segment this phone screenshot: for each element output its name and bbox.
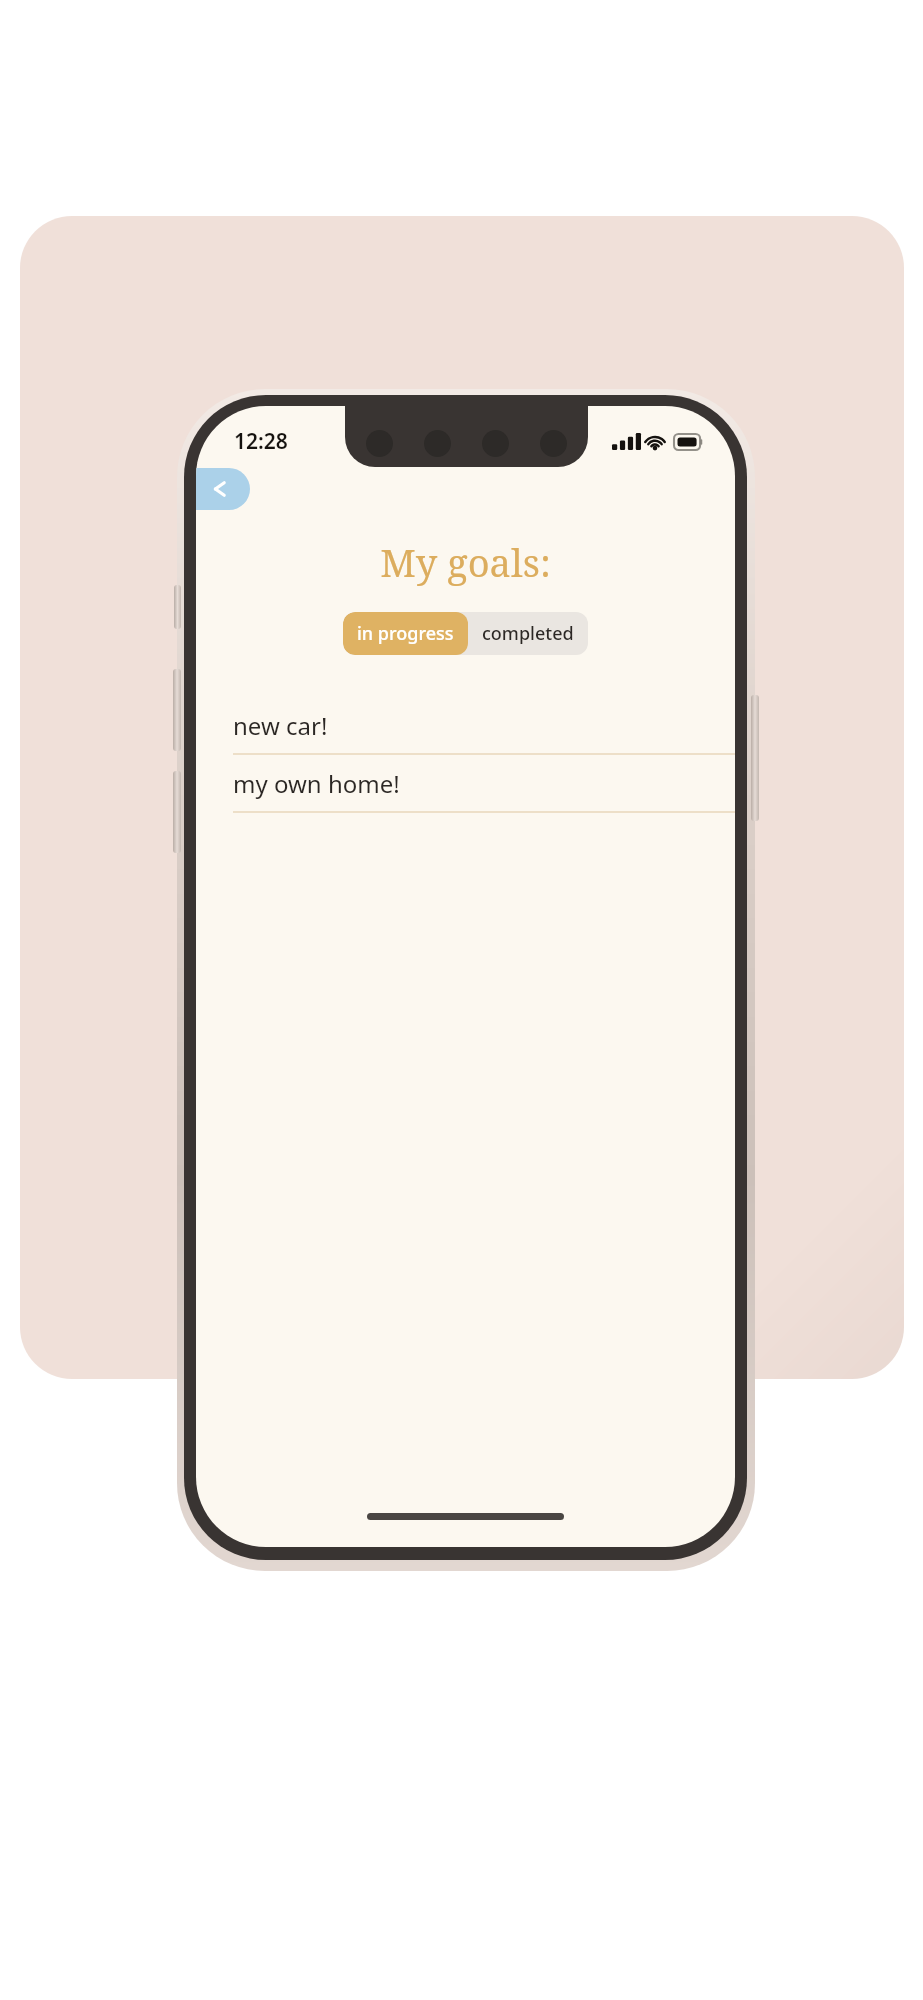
staticText: new car! xyxy=(233,709,328,742)
staticText: My goals: xyxy=(196,536,735,588)
button[interactable]: Back xyxy=(196,468,250,510)
staticText: completed xyxy=(482,621,574,646)
button[interactable]: new car! xyxy=(196,697,735,755)
button[interactable]: completed xyxy=(468,612,588,655)
staticText: in progress xyxy=(357,621,454,646)
staticText: 12:28 xyxy=(234,427,288,456)
button[interactable]: in progress xyxy=(343,612,468,655)
staticText: my own home! xyxy=(233,767,400,800)
button[interactable]: my own home! xyxy=(196,755,735,813)
